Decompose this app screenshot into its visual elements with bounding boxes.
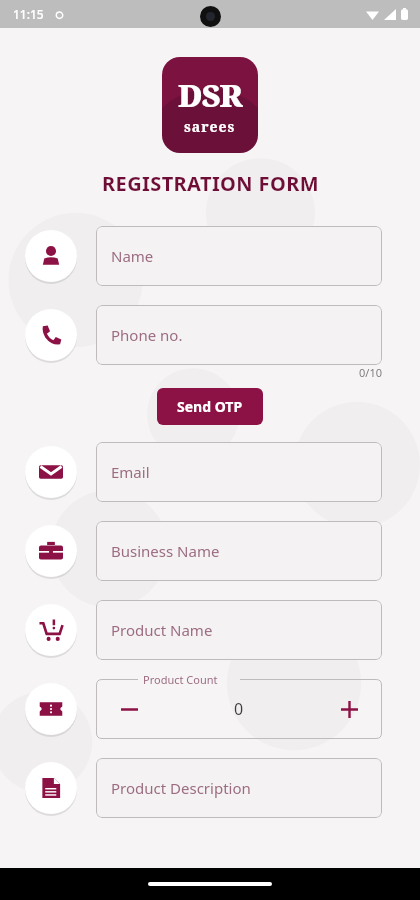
- button[interactable]: Name: [25, 230, 77, 282]
- staticText: sarees: [184, 117, 236, 136]
- staticText: Phone no.: [111, 325, 183, 345]
- staticText: REGISTRATION FORM: [102, 170, 319, 197]
- staticText: 0/10: [359, 365, 382, 380]
- button[interactable]: Send OTP: [157, 388, 263, 425]
- staticText: Name: [111, 246, 154, 266]
- staticText: Product Name: [111, 620, 213, 640]
- button[interactable]: Product count: [25, 683, 77, 735]
- staticText: DSR: [178, 74, 242, 116]
- button[interactable]: Product Description: [96, 758, 382, 818]
- staticText: Business Name: [111, 541, 220, 561]
- staticText: 11:15: [13, 6, 44, 22]
- button[interactable]: Product Name: [25, 604, 77, 656]
- staticText: Email: [111, 462, 150, 482]
- staticText: Send OTP: [177, 397, 243, 416]
- staticText: 0: [234, 698, 244, 720]
- staticText: Product Description: [111, 778, 251, 798]
- button[interactable]: Name: [96, 226, 382, 286]
- button[interactable]: Phone no.: [96, 305, 382, 365]
- button[interactable]: Business Name: [96, 521, 382, 581]
- staticText: Product Count: [143, 672, 218, 687]
- button[interactable]: Business Name: [25, 525, 77, 577]
- button[interactable]: Decrease: [114, 694, 144, 724]
- button[interactable]: Email: [96, 442, 382, 502]
- button[interactable]: Product Description: [25, 762, 77, 814]
- button[interactable]: Email: [25, 446, 77, 498]
- button[interactable]: Product Name: [96, 600, 382, 660]
- button[interactable]: Phone no.: [25, 309, 77, 361]
- button[interactable]: Increase: [334, 694, 364, 724]
